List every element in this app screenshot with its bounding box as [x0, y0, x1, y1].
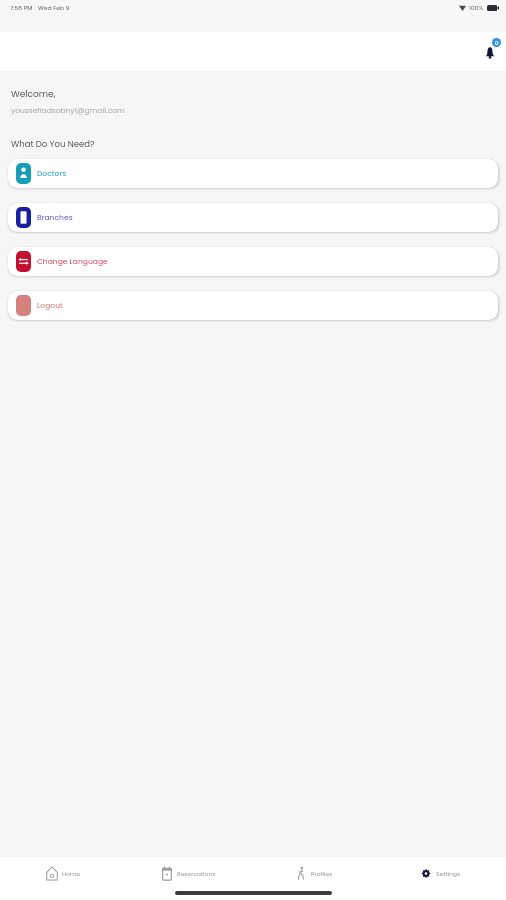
button[interactable]: Reservations — [125, 866, 251, 881]
button[interactable]: Profiles — [251, 866, 377, 881]
button[interactable]: Notifications — [476, 37, 502, 67]
staticText: What Do You Need? — [11, 138, 95, 150]
staticText: Settings — [436, 870, 461, 878]
button[interactable]: Doctors — [8, 159, 498, 188]
staticText: Doctors — [37, 168, 67, 179]
staticText: Profiles — [311, 870, 333, 878]
staticText: 0 — [495, 39, 499, 47]
staticText: 100% — [469, 4, 484, 12]
staticText: youssefladsobhy1@gmail.com — [11, 105, 125, 115]
staticText: Wed Feb 9 — [38, 4, 70, 12]
button[interactable]: Home — [0, 866, 125, 881]
button[interactable]: Branches — [8, 203, 498, 232]
button[interactable]: Change Language — [8, 247, 498, 276]
staticText: Home — [62, 870, 80, 878]
staticText: Branches — [37, 212, 73, 223]
staticText: Logout — [37, 300, 63, 311]
staticText: Change Language — [37, 256, 108, 267]
staticText: 7:58 PM — [10, 4, 33, 12]
button[interactable]: Logout — [8, 291, 498, 320]
button[interactable]: Settings — [377, 866, 503, 881]
staticText: Reservations — [177, 870, 216, 878]
staticText: Welcome, — [11, 88, 56, 101]
